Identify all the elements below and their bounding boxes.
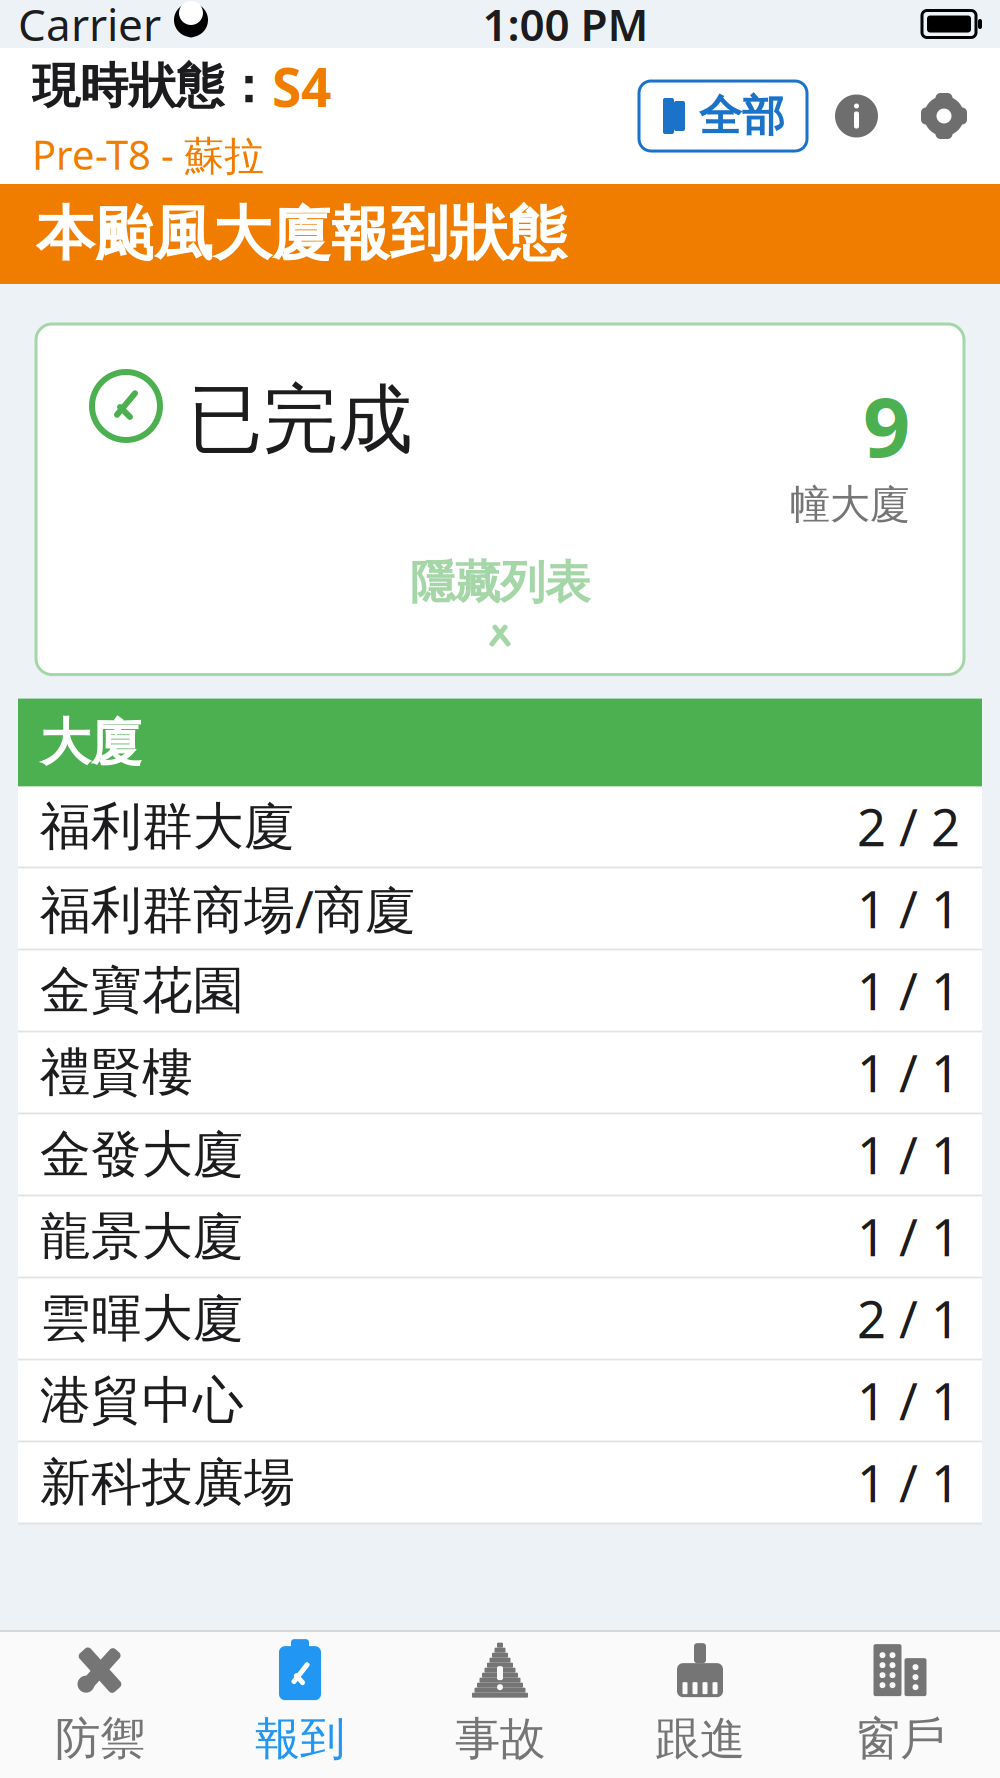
button[interactable]: Settings bbox=[920, 92, 968, 140]
button[interactable]: 金發大廈 bbox=[18, 1115, 982, 1197]
staticText: 事故 bbox=[455, 1711, 545, 1767]
staticText: 現時狀態： bbox=[32, 57, 272, 116]
staticText: 1 / 1 bbox=[857, 1449, 960, 1516]
staticText: Carrier bbox=[18, 0, 161, 53]
button[interactable]: 防禦 bbox=[0, 1623, 200, 1778]
button[interactable]: 窗戶 bbox=[800, 1623, 1000, 1778]
staticText: 報到 bbox=[255, 1711, 345, 1767]
staticText: 新科技廣場 bbox=[40, 1451, 295, 1514]
staticText: 金寶花園 bbox=[40, 959, 244, 1022]
staticText: 1 / 1 bbox=[857, 957, 960, 1024]
staticText: 金發大廈 bbox=[40, 1123, 244, 1186]
staticText: S4 bbox=[272, 51, 332, 122]
staticText: 港貿中心 bbox=[40, 1369, 244, 1432]
staticText: 福利群大廈 bbox=[40, 795, 295, 858]
button[interactable]: 事故 bbox=[400, 1623, 600, 1778]
staticText: 已完成 bbox=[188, 374, 413, 466]
button[interactable]: 金寶花園 bbox=[18, 951, 982, 1033]
staticText: 龍景大廈 bbox=[40, 1205, 244, 1268]
staticText: 福利群商場/商廈 bbox=[40, 875, 416, 942]
button[interactable]: Information bbox=[835, 94, 878, 137]
staticText: 2 / 1 bbox=[857, 1285, 960, 1352]
button[interactable]: 新科技廣場 bbox=[18, 1443, 982, 1523]
staticText: 1:00 PM bbox=[482, 0, 648, 53]
staticText: 雲暉大廈 bbox=[40, 1287, 244, 1350]
staticText: 窗戶 bbox=[855, 1711, 945, 1767]
button[interactable]: 福利群商場/商廈 bbox=[18, 869, 982, 951]
staticText: 防禦 bbox=[55, 1711, 145, 1767]
staticText: 幢大廈 bbox=[790, 480, 910, 529]
button[interactable]: 禮賢樓 bbox=[18, 1033, 982, 1115]
staticText: 2 / 2 bbox=[857, 793, 960, 860]
staticText: 1 / 1 bbox=[857, 1121, 960, 1188]
staticText: 1 / 1 bbox=[857, 1367, 960, 1434]
button[interactable]: 全部 bbox=[639, 81, 807, 151]
staticText: 跟進 bbox=[655, 1711, 745, 1767]
button[interactable]: 跟進 bbox=[600, 1623, 800, 1778]
staticText: Pre-T8 - 蘇拉 bbox=[32, 128, 264, 181]
staticText: 禮賢樓 bbox=[40, 1041, 193, 1104]
staticText: 9 bbox=[863, 370, 910, 480]
button[interactable]: 港貿中心 bbox=[18, 1361, 982, 1443]
staticText: 1 / 1 bbox=[857, 1039, 960, 1106]
staticText: 1 / 1 bbox=[857, 1203, 960, 1270]
staticText: 隱藏列表 bbox=[410, 555, 590, 611]
button[interactable]: 龍景大廈 bbox=[18, 1197, 982, 1279]
staticText: 全部 bbox=[699, 90, 785, 142]
staticText: 大廈 bbox=[40, 711, 142, 774]
button[interactable]: 報到 bbox=[200, 1623, 400, 1778]
button[interactable]: 雲暉大廈 bbox=[18, 1279, 982, 1361]
staticText: 本颱風大廈報到狀態 bbox=[36, 198, 567, 270]
button[interactable]: 已完成 bbox=[36, 324, 964, 675]
button[interactable]: 福利群大廈 bbox=[18, 787, 982, 869]
staticText: 1 / 1 bbox=[857, 875, 960, 942]
